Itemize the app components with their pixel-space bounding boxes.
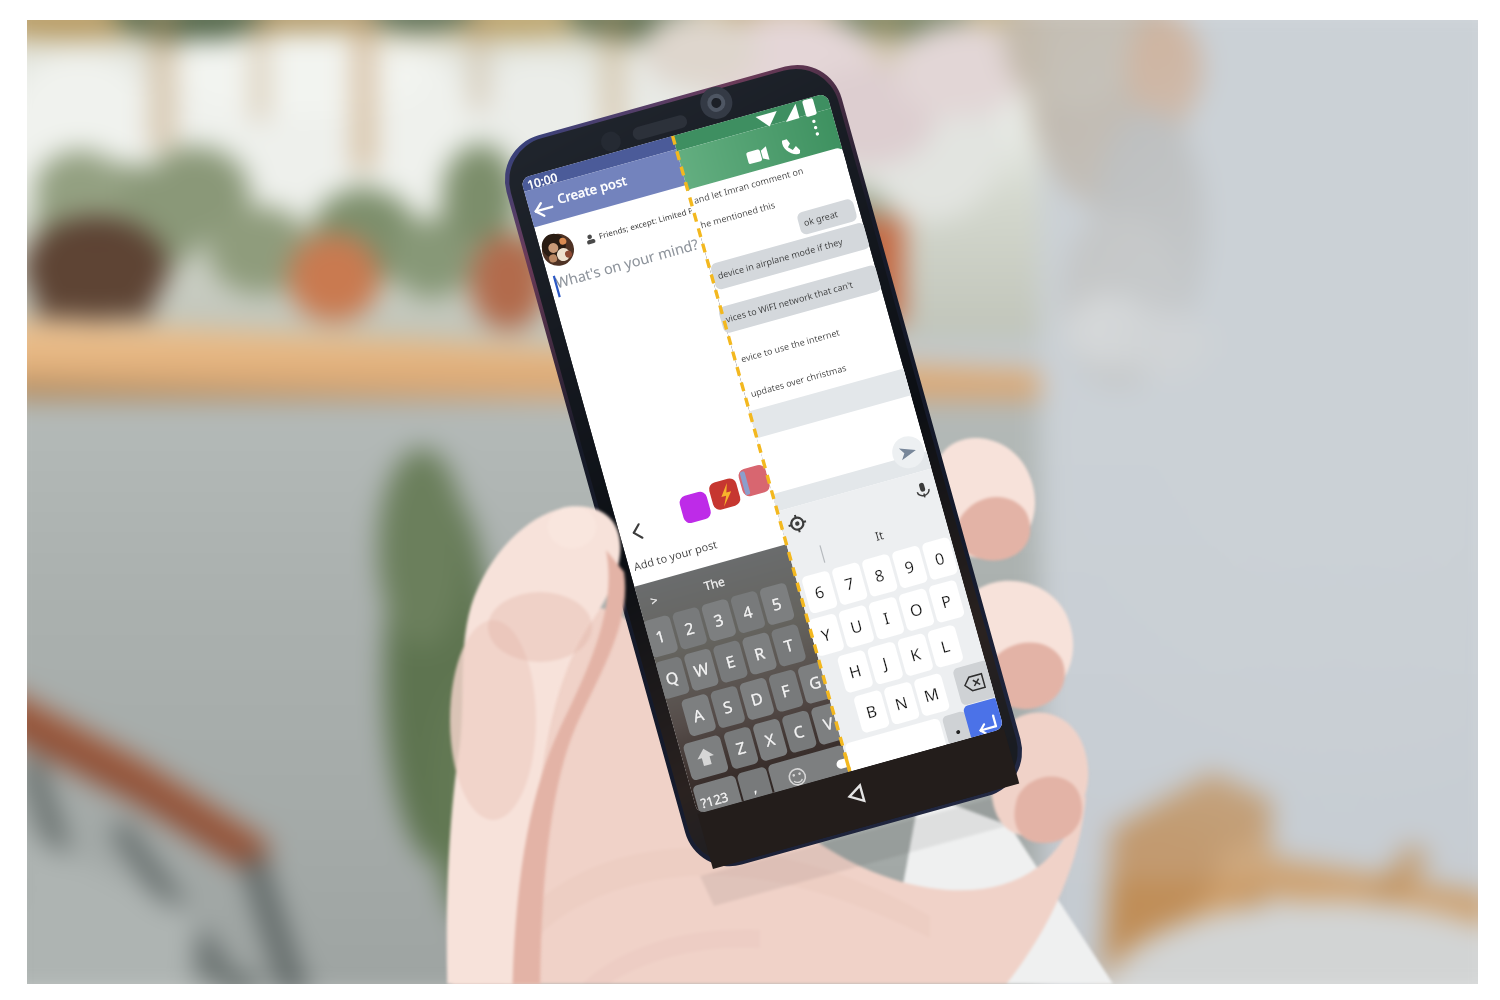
button[interactable]: Back bbox=[528, 194, 560, 224]
button[interactable]: Colour background bbox=[680, 488, 708, 516]
button[interactable]: More options bbox=[804, 112, 826, 142]
button[interactable]: Voice input bbox=[910, 477, 936, 503]
button[interactable]: Split screen divider bbox=[841, 784, 871, 806]
button[interactable]: Backspace bbox=[955, 663, 995, 703]
button[interactable]: Send message bbox=[889, 433, 927, 471]
button[interactable]: Video call bbox=[741, 141, 769, 169]
button[interactable]: Back to stickers bbox=[623, 515, 651, 543]
button[interactable]: Enter key bbox=[966, 701, 1006, 745]
button[interactable]: Add to your post bbox=[626, 536, 736, 562]
button[interactable]: Navigate back bbox=[849, 811, 885, 843]
button[interactable]: Symbols keyboard bbox=[695, 780, 741, 816]
button[interactable]: Camera bbox=[739, 461, 767, 489]
button[interactable]: Create post bbox=[546, 174, 656, 206]
button[interactable]: Voice call bbox=[775, 131, 803, 159]
button[interactable]: What's on your mind? bbox=[544, 250, 694, 290]
button[interactable]: Profile photo bbox=[540, 232, 576, 268]
button[interactable]: Effects bbox=[709, 474, 737, 502]
button[interactable]: Audience: Friends; except: Limited Profi… bbox=[583, 214, 693, 242]
button[interactable]: Keyboard settings bbox=[784, 511, 810, 537]
